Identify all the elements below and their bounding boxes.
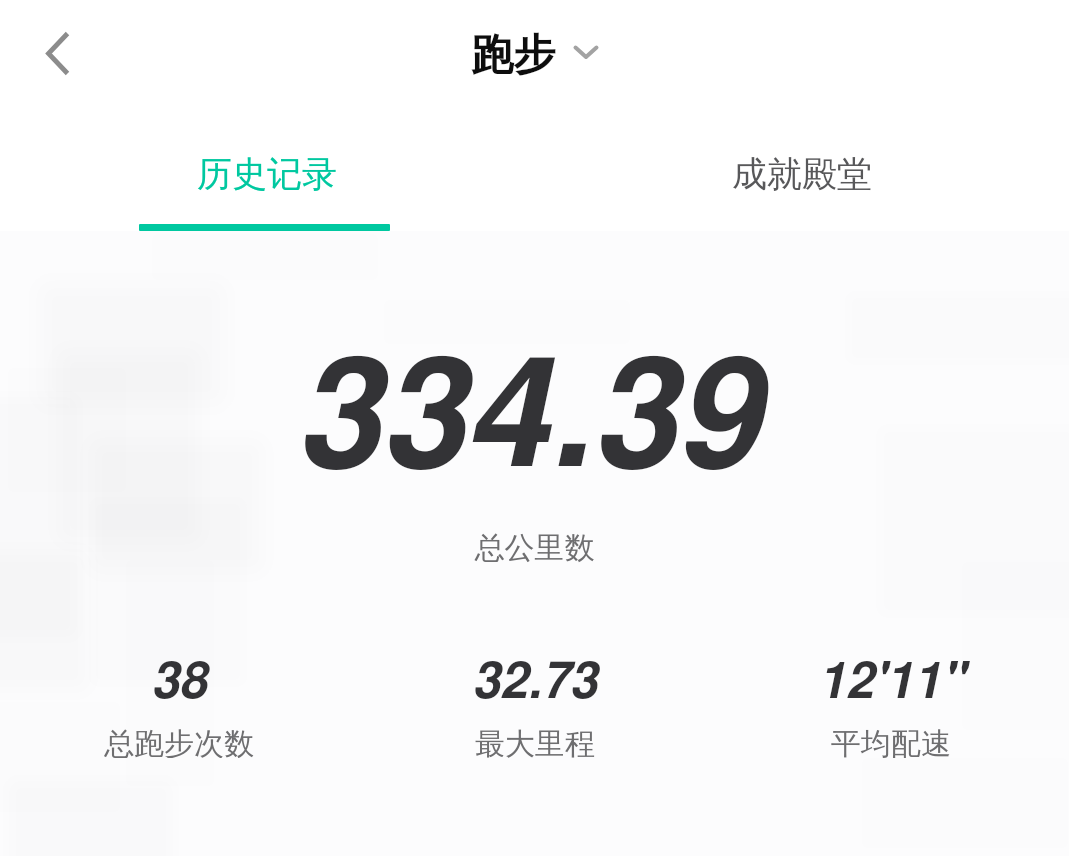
staticText: 12'11" [818,658,965,708]
staticText: 成就殿堂 [732,152,872,196]
staticText: 38 [151,658,207,708]
staticText: 32.73 [472,658,598,708]
staticText: 总公里数 [0,529,1069,567]
button[interactable]: 38 [0,658,357,758]
staticText: 334.39 [0,344,1062,496]
staticText: 平均配速 [831,725,951,758]
button[interactable]: 32.73 [357,658,713,758]
staticText: 跑步 [471,29,555,82]
button[interactable]: Change activity type [569,39,603,73]
button[interactable]: 成就殿堂 [534,0,1069,231]
staticText: 最大里程 [475,725,595,758]
button[interactable]: 历史记录 [0,0,534,231]
button[interactable]: Back [28,25,88,85]
staticText: 总跑步次数 [104,725,254,758]
staticText: 历史记录 [197,152,337,196]
button[interactable]: 12'11" [713,658,1069,758]
